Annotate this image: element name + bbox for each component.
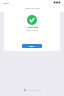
button[interactable]: secure-pay.com	[0, 5, 64, 12]
staticText: 9:41	[4, 1, 9, 4]
button[interactable]: Done	[22, 44, 42, 48]
staticText: Order #18245	[26, 29, 39, 32]
staticText: Done	[29, 45, 35, 48]
staticText: Thank you!	[27, 26, 38, 29]
staticText: Secure payment	[27, 89, 41, 91]
staticText: secure-pay.com	[25, 7, 40, 10]
other: Status icons	[54, 1, 60, 4]
